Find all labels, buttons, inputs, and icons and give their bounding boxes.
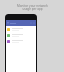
staticText: Monitor your network [17,4,48,8]
button[interactable] [6,32,36,38]
other: Menu [7,22,9,24]
button[interactable] [6,26,36,32]
button[interactable]: Menu [6,20,36,26]
staticText: usage per app [22,7,43,11]
button[interactable] [6,38,36,44]
